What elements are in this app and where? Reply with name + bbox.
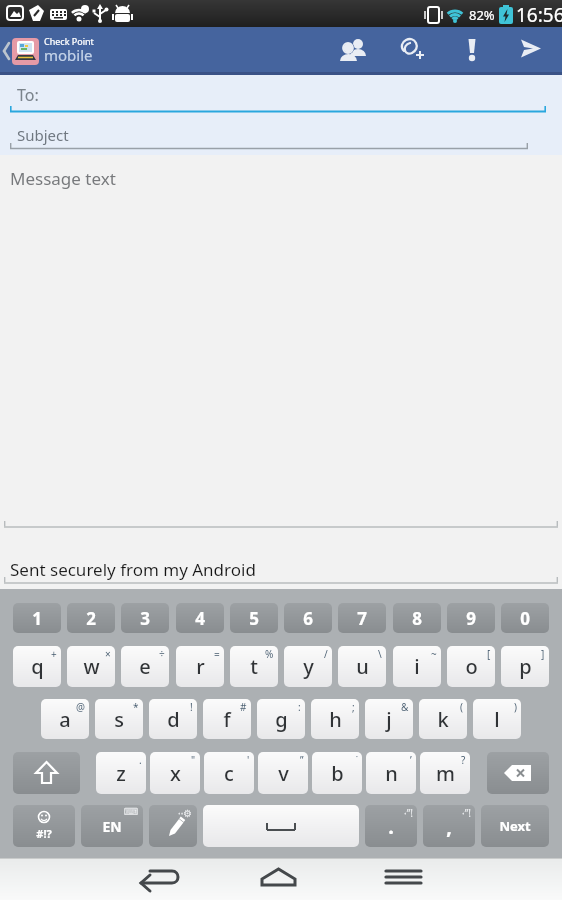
button[interactable]: Subject [0, 113, 562, 155]
button[interactable]: i [393, 646, 441, 687]
button[interactable]: k [419, 699, 467, 739]
button[interactable]: , [423, 805, 475, 847]
button[interactable]: n [366, 752, 416, 794]
staticText: y [303, 653, 314, 680]
button[interactable]: 8 [393, 603, 441, 633]
staticText: ⌨ [124, 806, 139, 818]
button[interactable]: m [420, 752, 470, 794]
staticText: [ [487, 647, 491, 661]
button[interactable]: d [149, 699, 197, 739]
staticText: " [191, 753, 196, 767]
staticText: . [139, 753, 142, 767]
staticText: v [278, 760, 289, 787]
staticText: t [250, 653, 258, 680]
staticText: , [446, 813, 452, 840]
staticText: = [214, 647, 220, 661]
button[interactable]: v [258, 752, 308, 794]
staticText: & [401, 700, 409, 714]
staticText: To: [17, 84, 39, 106]
button[interactable]: h [311, 699, 359, 739]
staticText: o [465, 653, 478, 680]
button[interactable]: Next [481, 805, 549, 847]
button[interactable]: Message text [0, 155, 562, 589]
staticText: c [224, 760, 234, 787]
staticText: ( [460, 700, 463, 714]
staticText: ; [352, 700, 355, 714]
staticText: 7 [357, 607, 367, 630]
staticText: ·”! [404, 806, 413, 820]
button[interactable] [354, 27, 410, 75]
button[interactable]: 1 [13, 603, 61, 633]
staticText: Subject [17, 125, 69, 145]
button[interactable]: s [95, 699, 143, 739]
staticText: j [386, 706, 392, 733]
staticText: ˙ [356, 753, 358, 767]
button[interactable]: q [13, 646, 61, 687]
button[interactable]: 9 [447, 603, 495, 633]
staticText: r [196, 653, 205, 680]
button[interactable]: u [338, 646, 386, 687]
button[interactable]: c [204, 752, 254, 794]
staticText: ·”! [462, 806, 471, 820]
button[interactable]: j [365, 699, 413, 739]
staticText: Sent securely from my Android [10, 558, 256, 581]
button[interactable] [410, 27, 466, 75]
staticText: 3 [140, 607, 150, 630]
button[interactable]: t [230, 646, 278, 687]
button[interactable] [13, 752, 80, 794]
button[interactable]: #!? [13, 805, 75, 847]
button[interactable]: y [284, 646, 332, 687]
button[interactable]: w [67, 646, 115, 687]
staticText: z [116, 760, 126, 787]
staticText: i [414, 653, 420, 680]
button[interactable]: 5 [230, 603, 278, 633]
button[interactable] [188, 858, 375, 900]
staticText: ÷ [159, 647, 165, 661]
button[interactable]: b [312, 752, 362, 794]
staticText: a [59, 706, 71, 733]
button[interactable]: 2 [67, 603, 115, 633]
button[interactable]: z [96, 752, 146, 794]
staticText: # [240, 700, 247, 714]
button[interactable]: ··⚙ [149, 805, 197, 847]
staticText: 82% [469, 6, 495, 24]
staticText: Next [499, 817, 531, 835]
button[interactable]: l [473, 699, 521, 739]
button[interactable]: 7 [338, 603, 386, 633]
staticText: ) [514, 700, 517, 714]
staticText: . [388, 813, 394, 840]
button[interactable]: 6 [284, 603, 332, 633]
button[interactable]: x [150, 752, 200, 794]
button[interactable]: EN [81, 805, 143, 847]
button[interactable]: 4 [176, 603, 224, 633]
staticText: ’ [410, 753, 412, 767]
button[interactable]: . [365, 805, 417, 847]
staticText: \ [378, 647, 382, 661]
button[interactable]: p [501, 646, 549, 687]
button[interactable]: To: [0, 75, 562, 113]
staticText: 2 [86, 607, 96, 630]
button[interactable]: r [176, 646, 224, 687]
staticText: d [167, 706, 180, 733]
button[interactable]: o [447, 646, 495, 687]
button[interactable]: f [203, 699, 251, 739]
button[interactable] [466, 27, 522, 75]
button[interactable]: a [41, 699, 89, 739]
staticText: ' [247, 753, 250, 767]
button[interactable] [487, 752, 549, 794]
button[interactable]: 3 [121, 603, 169, 633]
button[interactable] [0, 858, 188, 900]
button[interactable] [0, 27, 12, 75]
staticText: k [437, 706, 449, 733]
staticText: ] [541, 647, 545, 661]
staticText: 16:56 [516, 2, 562, 28]
staticText: ? [461, 753, 466, 767]
button[interactable] [203, 805, 359, 847]
staticText: @ [76, 700, 85, 714]
staticText: mobile [44, 45, 93, 65]
button[interactable]: 0 [501, 603, 549, 633]
button[interactable] [522, 27, 562, 75]
button[interactable] [375, 858, 562, 900]
button[interactable]: g [257, 699, 305, 739]
button[interactable]: e [121, 646, 169, 687]
